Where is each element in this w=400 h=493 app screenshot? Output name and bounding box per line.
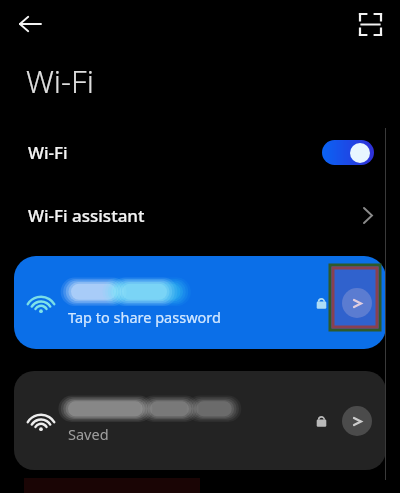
staticText: Saved [68, 424, 109, 444]
button[interactable]: Network details [342, 406, 372, 436]
staticText: Tap to share password [68, 307, 221, 327]
button[interactable]: Saved network [14, 371, 386, 470]
staticText: Wi-Fi [28, 141, 68, 164]
button[interactable]: Back [8, 2, 52, 46]
button[interactable]: Scan QR code [348, 2, 392, 46]
button[interactable]: Wi-Fi [0, 126, 400, 178]
button[interactable]: Wi-Fi assistant [0, 194, 400, 236]
button[interactable]: Wi-Fi on [322, 140, 374, 165]
button[interactable]: Connected network [14, 256, 386, 349]
staticText: Wi-Fi [26, 60, 94, 102]
button[interactable]: Network details [342, 288, 372, 318]
staticText: Wi-Fi assistant [28, 204, 145, 227]
